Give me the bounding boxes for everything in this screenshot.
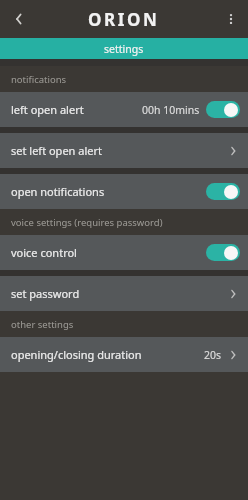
button[interactable]: Back [0, 0, 38, 38]
button[interactable]: voice control [0, 235, 248, 270]
staticText: 00h 10mins [142, 103, 200, 117]
staticText: voice control [11, 245, 77, 260]
staticText: opening/closing duration [11, 347, 142, 362]
button[interactable]: settings [0, 38, 248, 59]
button[interactable]: left open alert [0, 92, 248, 127]
staticText: other settings [11, 318, 74, 331]
staticText: set password [11, 286, 80, 301]
staticText: voice settings (requires password) [11, 216, 163, 229]
staticText: settings [104, 42, 144, 56]
button[interactable]: More options [214, 2, 248, 36]
staticText: ORION [88, 8, 160, 31]
staticText: open notifications [11, 184, 105, 199]
staticText: 20s [204, 348, 222, 362]
button[interactable]: open notifications [0, 174, 248, 209]
button[interactable]: set left open alert [0, 133, 248, 168]
button[interactable]: set password [0, 276, 248, 311]
staticText: set left open alert [11, 143, 102, 158]
staticText: notifications [11, 73, 67, 86]
staticText: left open alert [11, 102, 84, 117]
button[interactable]: opening/closing duration [0, 337, 248, 372]
